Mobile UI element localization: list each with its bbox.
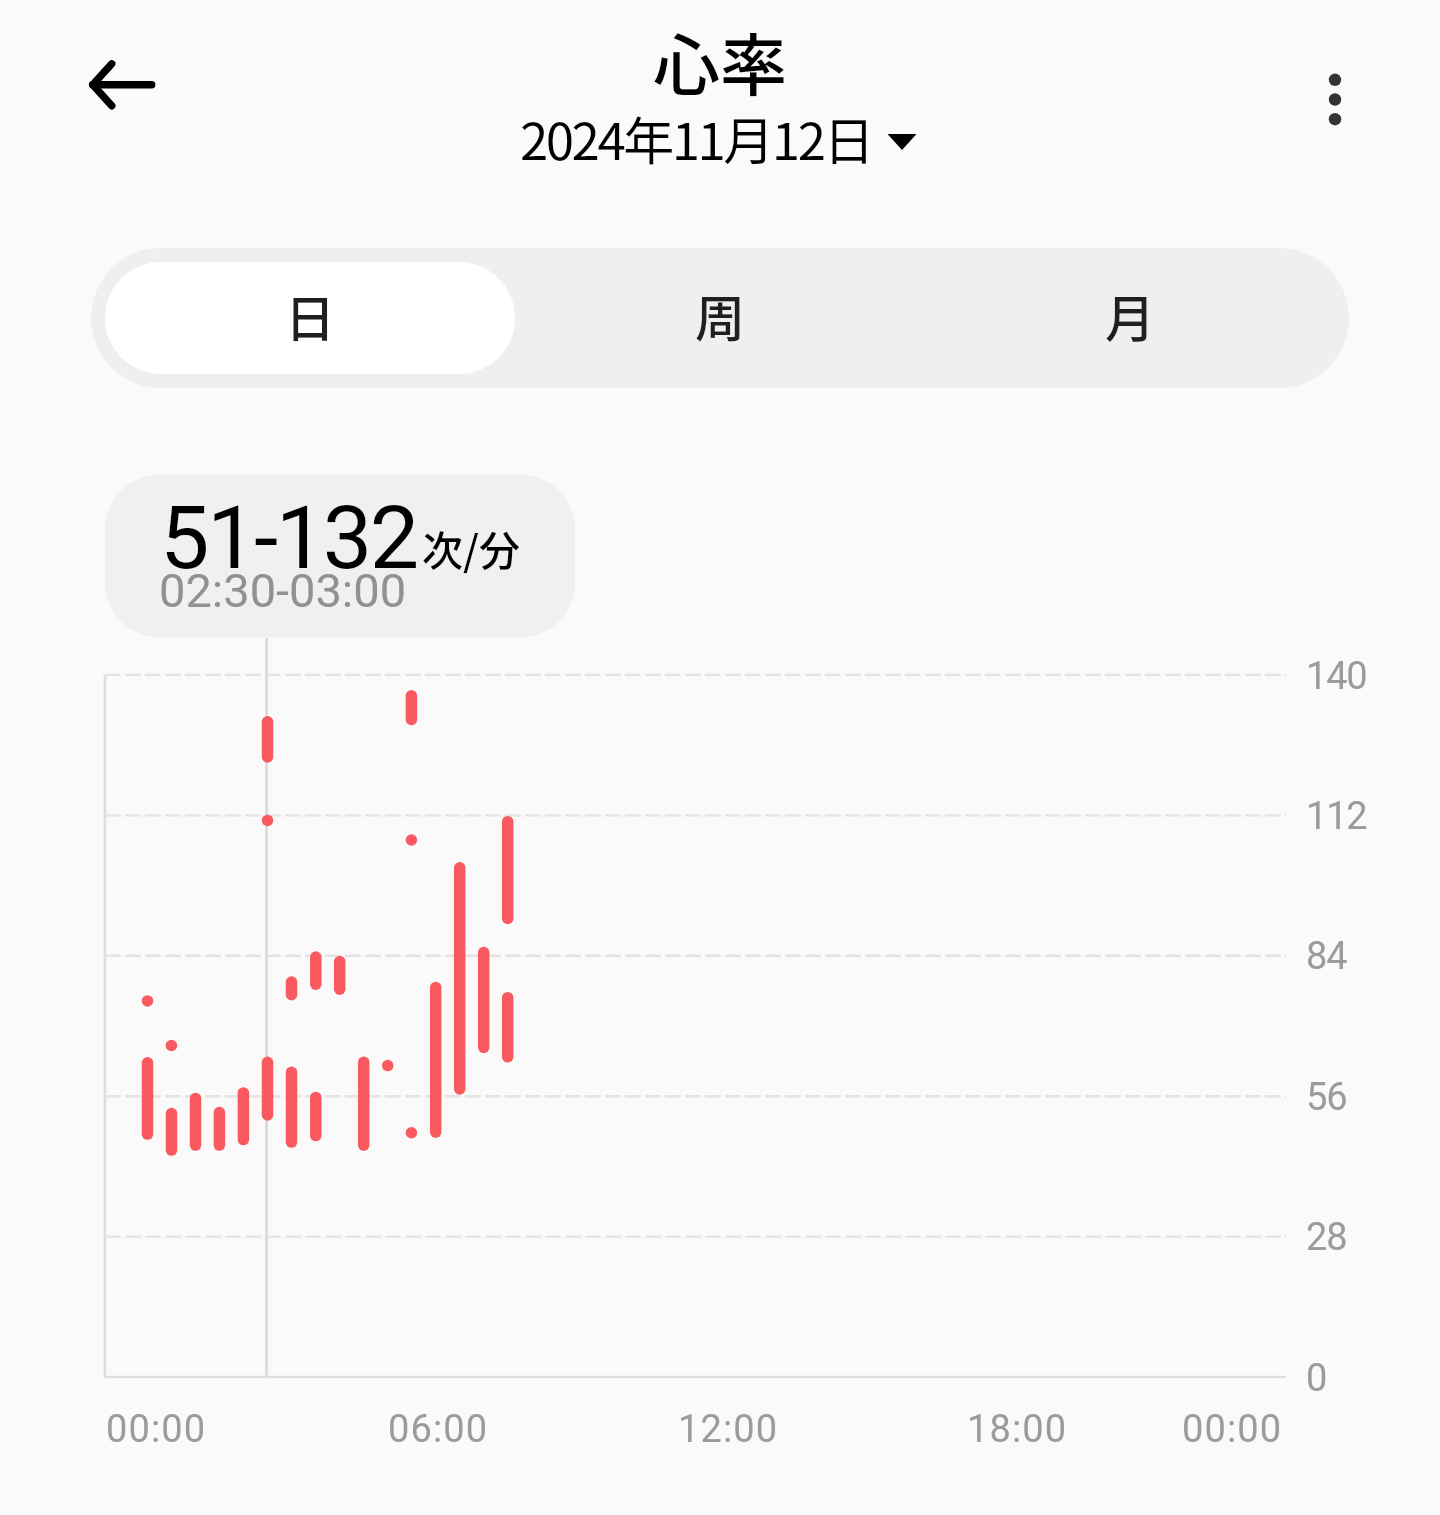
staticText: 0 <box>1306 1356 1327 1401</box>
staticText: 00:00 <box>106 1407 207 1452</box>
staticText: 2024年11月12日 <box>520 101 872 175</box>
staticText: 140 <box>1306 654 1367 699</box>
staticText: 06:00 <box>388 1407 489 1452</box>
button[interactable]: 51-132 <box>105 475 575 637</box>
staticText: 84 <box>1306 934 1347 979</box>
staticText: 月 <box>1105 279 1155 351</box>
button[interactable]: 日 <box>105 262 515 374</box>
staticText: 02:30-03:00 <box>159 563 407 618</box>
staticText: 51-132 <box>160 486 417 589</box>
button[interactable]: Back <box>62 31 168 137</box>
staticText: 28 <box>1306 1215 1347 1260</box>
staticText: 周 <box>695 279 745 351</box>
button[interactable]: 2024年11月12日 <box>520 101 917 175</box>
staticText: 56 <box>1306 1075 1347 1120</box>
staticText: 日 <box>285 279 335 351</box>
staticText: 18:00 <box>967 1407 1068 1452</box>
staticText: 00:00 <box>1182 1407 1283 1452</box>
staticText: 心率 <box>653 12 787 109</box>
button[interactable]: 月 <box>925 262 1335 374</box>
button[interactable]: More options <box>1285 46 1385 153</box>
staticText: 次/分 <box>422 518 520 577</box>
button[interactable]: 周 <box>515 262 925 374</box>
staticText: 112 <box>1306 794 1367 839</box>
staticText: 12:00 <box>678 1407 779 1452</box>
